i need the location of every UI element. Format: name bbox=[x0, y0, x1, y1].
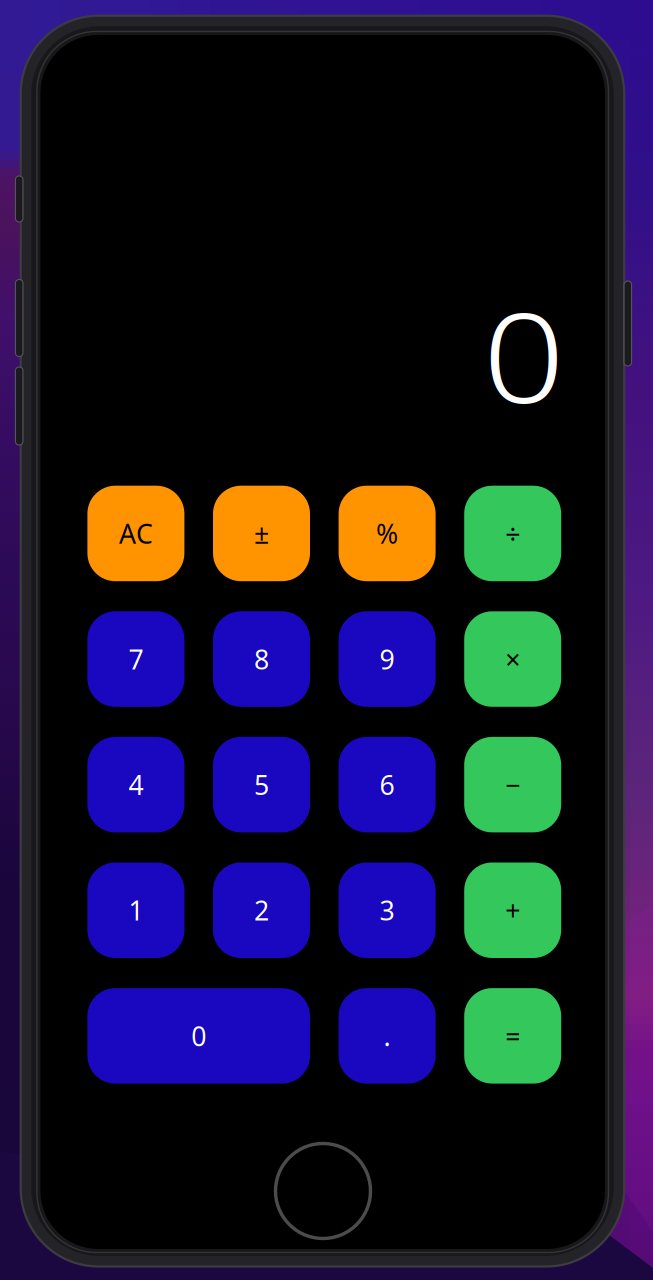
staticText: 6 bbox=[380, 767, 395, 802]
staticText: ÷ bbox=[505, 516, 520, 551]
staticText: 7 bbox=[128, 641, 143, 677]
staticText: 2 bbox=[254, 892, 269, 928]
staticText: AC bbox=[119, 516, 153, 551]
staticText: 8 bbox=[254, 641, 269, 677]
button[interactable]: 7 bbox=[87, 611, 184, 707]
staticText: 4 bbox=[128, 767, 143, 802]
button[interactable]: 0 bbox=[87, 988, 310, 1084]
button[interactable]: 1 bbox=[87, 862, 184, 958]
button[interactable]: % bbox=[339, 486, 436, 581]
button[interactable]: 8 bbox=[213, 611, 310, 707]
button[interactable]: − bbox=[464, 737, 561, 832]
button[interactable]: 4 bbox=[87, 737, 184, 832]
staticText: 3 bbox=[380, 892, 395, 928]
button[interactable]: . bbox=[339, 988, 436, 1084]
button[interactable]: AC bbox=[87, 486, 184, 581]
button[interactable]: ± bbox=[213, 486, 310, 581]
button[interactable]: 5 bbox=[213, 737, 310, 832]
staticText: × bbox=[505, 641, 520, 677]
staticText: = bbox=[505, 1018, 520, 1053]
staticText: 1 bbox=[128, 892, 143, 928]
button[interactable]: ÷ bbox=[464, 486, 561, 581]
staticText: 9 bbox=[380, 641, 395, 677]
button[interactable]: × bbox=[464, 611, 561, 707]
button[interactable]: Home bbox=[275, 1143, 370, 1238]
button[interactable]: + bbox=[464, 862, 561, 958]
button[interactable]: 9 bbox=[339, 611, 436, 707]
staticText: . bbox=[384, 1018, 391, 1053]
staticText: ± bbox=[254, 516, 269, 551]
staticText: + bbox=[505, 892, 520, 928]
staticText: 0 bbox=[191, 1018, 206, 1053]
staticText: 5 bbox=[254, 767, 269, 802]
button[interactable]: 6 bbox=[339, 737, 436, 832]
button[interactable]: 2 bbox=[213, 862, 310, 958]
staticText: 0 bbox=[488, 273, 559, 437]
button[interactable]: 3 bbox=[339, 862, 436, 958]
button[interactable]: = bbox=[464, 988, 561, 1084]
staticText: % bbox=[376, 516, 398, 551]
staticText: − bbox=[505, 767, 520, 802]
